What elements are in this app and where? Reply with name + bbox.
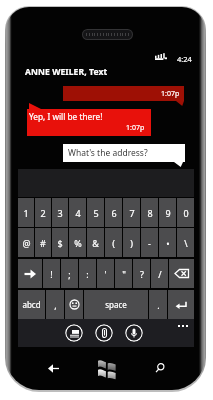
button[interactable]: Attach: [95, 324, 113, 342]
staticText: /: [158, 268, 162, 280]
staticText: 7: [129, 207, 135, 219]
button[interactable]: 3: [52, 198, 68, 227]
staticText: Yep, I will be there!: [29, 111, 103, 122]
button[interactable]: ": [115, 259, 132, 288]
button[interactable]: ;: [61, 259, 78, 288]
staticText: ,: [54, 299, 57, 311]
button[interactable]: .: [149, 290, 167, 319]
staticText: ;: [68, 268, 71, 280]
button[interactable]: Voice input: [125, 324, 143, 342]
staticText: space: [105, 299, 127, 310]
button[interactable]: ': [97, 259, 114, 288]
staticText: ": [122, 268, 126, 280]
button[interactable]: •: [159, 228, 176, 257]
staticText: •: [166, 237, 170, 249]
staticText: 8: [147, 207, 153, 219]
staticText: abcd: [22, 299, 41, 310]
button[interactable]: ): [123, 228, 140, 257]
staticText: @: [22, 237, 31, 249]
button[interactable]: ?: [133, 259, 150, 288]
button[interactable]: \: [177, 228, 194, 257]
button[interactable]: 0: [177, 198, 194, 227]
staticText: !: [50, 268, 53, 280]
button[interactable]: Start: [95, 357, 118, 378]
staticText: $: [57, 237, 63, 249]
button[interactable]: [169, 259, 194, 288]
button[interactable]: 2: [35, 198, 51, 227]
staticText: 4:24: [177, 54, 192, 64]
button[interactable]: [168, 290, 194, 319]
button[interactable]: @: [18, 228, 34, 257]
button[interactable]: &: [87, 228, 104, 257]
staticText: .: [157, 299, 160, 311]
staticText: #: [40, 237, 46, 249]
button[interactable]: 9: [159, 198, 176, 227]
button[interactable]: Keyboard layout: [65, 324, 83, 342]
button[interactable]: %: [69, 228, 86, 257]
button[interactable]: 5: [87, 198, 104, 227]
staticText: &: [92, 237, 99, 249]
button[interactable]: #: [35, 228, 51, 257]
staticText: 1: [23, 207, 29, 219]
staticText: What's the address?: [68, 147, 148, 159]
button[interactable]: 1: [18, 198, 34, 227]
staticText: 9: [165, 207, 171, 219]
button[interactable]: [18, 259, 42, 288]
button[interactable]: Back: [41, 357, 65, 379]
button[interactable]: (: [105, 228, 122, 257]
button[interactable]: [65, 290, 83, 319]
staticText: 4: [75, 207, 81, 219]
button[interactable]: -: [141, 228, 158, 257]
staticText: ': [104, 268, 107, 280]
staticText: -: [148, 237, 151, 249]
staticText: %: [74, 237, 82, 249]
button[interactable]: ,: [46, 290, 64, 319]
button[interactable]: 6: [105, 198, 122, 227]
button[interactable]: :: [79, 259, 96, 288]
staticText: 1:07p: [161, 89, 180, 99]
staticText: 2: [40, 207, 46, 219]
button[interactable]: 7: [123, 198, 140, 227]
staticText: ?: [140, 268, 144, 280]
button[interactable]: abcd: [18, 290, 45, 319]
staticText: :: [86, 268, 89, 280]
staticText: 3: [57, 207, 63, 219]
staticText: (: [112, 237, 115, 249]
button[interactable]: $: [52, 228, 68, 257]
staticText: ): [130, 237, 133, 249]
button[interactable]: !: [43, 259, 60, 288]
button[interactable]: /: [151, 259, 168, 288]
button[interactable]: 4: [69, 198, 86, 227]
button[interactable]: space: [84, 290, 148, 319]
button[interactable]: 8: [141, 198, 158, 227]
staticText: 5: [93, 207, 99, 219]
staticText: 0: [183, 207, 189, 219]
staticText: ANNE WEILER, Text: [25, 66, 108, 78]
staticText: 6: [111, 207, 117, 219]
staticText: \: [184, 237, 188, 249]
button[interactable]: Search: [149, 357, 171, 379]
staticText: 1:07p: [126, 123, 145, 133]
